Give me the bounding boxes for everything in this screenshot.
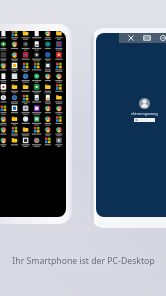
button[interactable]: More options: [155, 33, 166, 43]
button[interactable]: [0, 31, 66, 217]
button[interactable]: [134, 118, 155, 122]
button[interactable]: Close: [123, 33, 139, 43]
staticText: zhimengwang: [131, 111, 158, 116]
button[interactable]: Keyboard: [139, 33, 155, 43]
staticText: Ihr Smartphone ist der PC-Desktop: [12, 255, 155, 267]
button[interactable]: Close: [96, 33, 166, 217]
